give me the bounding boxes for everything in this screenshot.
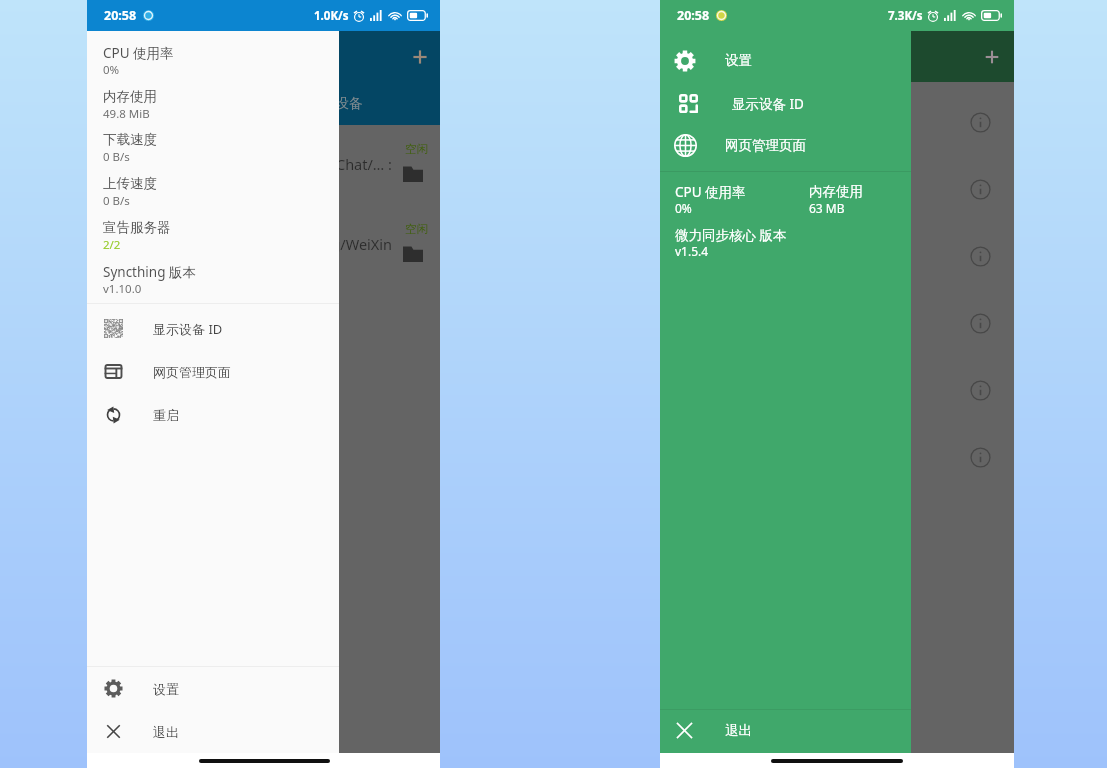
staticText: 2/2 (103, 237, 121, 253)
button[interactable]: 设置 (660, 39, 911, 82)
button[interactable]: Add (974, 39, 1010, 75)
button[interactable]: 退出 (87, 710, 339, 753)
staticText: 20:58 (677, 7, 710, 24)
staticText: CPU 使用率 (675, 183, 746, 201)
staticText: 空闲 (405, 142, 428, 156)
button[interactable]: 显示设备 ID (660, 82, 911, 125)
staticText: 上传速度 (103, 175, 157, 192)
staticText: CPU 使用率 (103, 44, 174, 62)
button[interactable]: Info (970, 246, 991, 267)
button[interactable]: 网页管理页面 (660, 124, 911, 167)
staticText: 0% (103, 62, 120, 78)
staticText: 显示设备 ID (732, 95, 804, 113)
staticText: …WeChat/… : (87, 154, 392, 174)
staticText: 退出 (725, 722, 752, 739)
staticText: 显示设备 ID (153, 320, 223, 338)
button[interactable]: Info (970, 112, 991, 133)
staticText: 下载速度 (103, 131, 157, 148)
button[interactable]: Info (970, 179, 991, 200)
button[interactable]: 退出 (660, 710, 911, 751)
staticText: v1.5.4 (675, 243, 709, 259)
staticText: 内存使用 (103, 88, 157, 105)
staticText: 设置 (725, 52, 752, 69)
button[interactable]: 显示设备 ID (87, 307, 339, 350)
button[interactable]: Add (402, 39, 438, 75)
staticText: 7.3K/s (888, 8, 923, 24)
staticText: 网页管理页面 (153, 364, 231, 380)
staticText: 微力同步核心 版本 (675, 226, 787, 244)
staticText: 退出 (153, 724, 179, 740)
staticText: 63 MB (809, 200, 845, 216)
staticText: 0 B/s (103, 193, 130, 209)
staticText: 空闲 (405, 222, 428, 236)
staticText: 49.8 MiB (103, 106, 150, 122)
staticText: 设备 (335, 95, 363, 113)
staticText: Syncthing 版本 (103, 263, 196, 281)
button[interactable]: 网页管理页面 (87, 350, 339, 393)
button[interactable]: Info (970, 313, 991, 334)
staticText: 0 B/s (103, 149, 130, 165)
button[interactable]: Info (970, 447, 991, 468)
staticText: …g/WeiXin (87, 234, 392, 254)
button[interactable]: 设置 (87, 667, 339, 710)
staticText: 1.0K/s (314, 8, 349, 24)
staticText: v1.10.0 (103, 281, 142, 297)
staticText: 内存使用 (809, 183, 863, 200)
staticText: 网页管理页面 (725, 137, 806, 154)
staticText: 重启 (153, 407, 179, 423)
staticText: 20:58 (104, 7, 137, 24)
button[interactable]: Info (970, 380, 991, 401)
staticText: 设置 (153, 681, 179, 697)
button[interactable]: 重启 (87, 393, 339, 436)
staticText: 宣告服务器 (103, 219, 171, 236)
staticText: 0% (675, 200, 692, 216)
